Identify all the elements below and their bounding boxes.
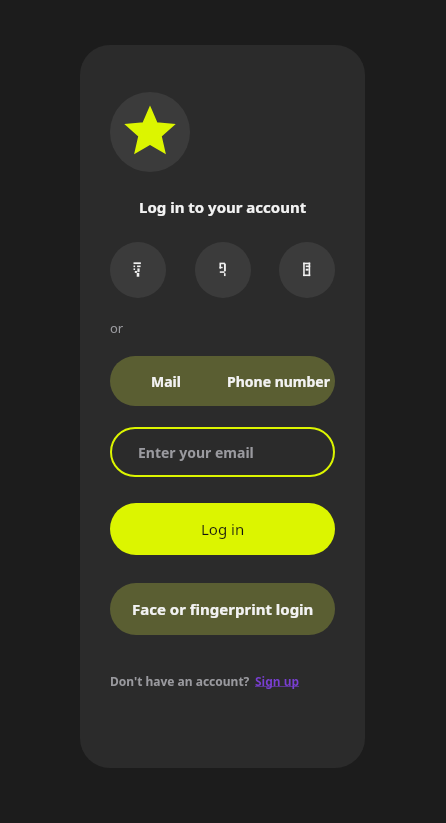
- staticText: Face or fingerprint login: [132, 599, 314, 619]
- button[interactable]: Sign in with Facebook: [279, 242, 335, 298]
- staticText: Log in: [201, 519, 245, 539]
- staticText: Don't have an account?: [110, 673, 250, 689]
- staticText: Sign up: [255, 673, 300, 689]
- staticText: Mail: [151, 372, 181, 391]
- button[interactable]: Mail: [110, 356, 222, 406]
- button[interactable]: Sign up: [255, 673, 300, 689]
- button[interactable]: Phone number: [222, 356, 335, 406]
- staticText: or: [110, 319, 124, 337]
- staticText: Log in to your account: [139, 197, 307, 217]
- staticText: Enter your email: [138, 443, 254, 462]
- button[interactable]: Enter your email: [110, 427, 335, 477]
- button[interactable]: Face or fingerprint login: [110, 583, 335, 635]
- button[interactable]: Sign in with Apple: [195, 242, 251, 298]
- button[interactable]: Log in: [110, 503, 335, 555]
- staticText: Phone number: [227, 372, 330, 391]
- button[interactable]: Sign in with Google: [110, 242, 166, 298]
